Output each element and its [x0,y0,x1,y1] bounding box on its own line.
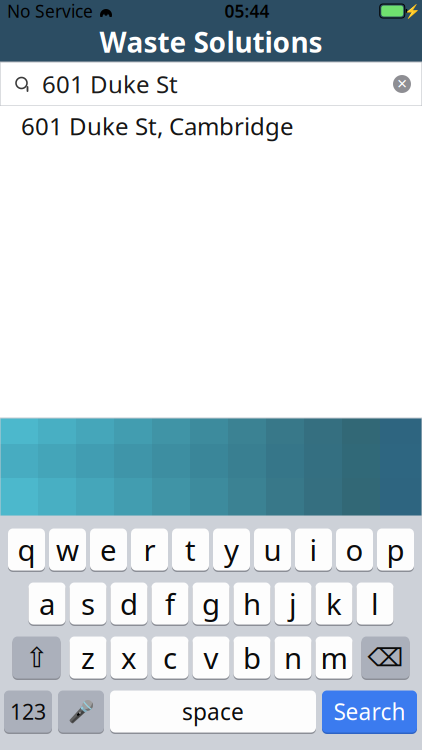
button[interactable]: Clear text [382,62,422,106]
staticText: 601 Duke St, Cambridge [21,110,294,142]
button[interactable]: k [315,581,352,626]
button[interactable]: c [151,635,188,680]
staticText: l [371,584,379,623]
button[interactable]: v [192,635,229,680]
staticText: u [263,530,281,569]
button[interactable]: p [377,527,414,572]
staticText: No Service [7,0,93,22]
staticText: b [243,638,261,677]
button[interactable]: o [336,527,373,572]
button[interactable]: a [28,581,65,626]
staticText: 05:44 [224,0,269,22]
staticText: f [165,584,175,623]
button[interactable]: x [110,635,147,680]
button[interactable]: Search [322,689,417,734]
button[interactable]: Delete [361,635,409,680]
staticText: g [202,584,220,623]
staticText: y [224,530,239,569]
button[interactable]: 601 Duke St, Cambridge [0,106,422,146]
staticText: w [56,530,79,569]
button[interactable]: Numbers [4,689,52,734]
button[interactable]: e [90,527,127,572]
staticText: c [163,638,177,677]
button[interactable]: z [69,635,106,680]
staticText: Search [333,696,405,726]
staticText: ⚡ [404,3,421,19]
button[interactable]: y [213,527,250,572]
staticText: v [203,638,218,677]
staticText: Waste Solutions [99,23,322,61]
button[interactable]: n [274,635,311,680]
button[interactable]: j [274,581,311,626]
staticText: 🎤 [67,699,94,724]
button[interactable]: g [192,581,229,626]
staticText: s [81,584,95,623]
staticText: ⇧ [25,642,48,673]
staticText: space [182,696,244,726]
staticText: 601 Duke St [42,68,178,100]
button[interactable]: q [8,527,45,572]
staticText: j [289,584,297,623]
button[interactable]: Shift [12,635,60,680]
staticText: d [120,584,138,623]
button[interactable]: l [356,581,393,626]
button[interactable]: Dictate [58,689,104,734]
button[interactable]: space [110,689,316,734]
staticText: 123 [10,697,46,726]
staticText: a [39,584,55,623]
staticText: x [121,638,137,677]
button[interactable]: u [254,527,291,572]
button[interactable]: i [295,527,332,572]
button[interactable]: t [172,527,209,572]
staticText: q [17,530,35,569]
button[interactable]: s [69,581,106,626]
staticText: m [320,638,347,677]
button[interactable]: d [110,581,147,626]
staticText: z [81,638,95,677]
staticText: o [345,530,363,569]
staticText: ⌫ [367,643,403,672]
button[interactable]: f [151,581,188,626]
button[interactable]: w [49,527,86,572]
button[interactable]: b [233,635,270,680]
staticText: n [284,638,302,677]
staticText: p [386,530,404,569]
staticText: ✕ [396,76,407,91]
staticText: e [100,530,117,569]
staticText: r [143,530,155,569]
staticText: h [243,584,261,623]
button[interactable]: h [233,581,270,626]
button[interactable]: r [131,527,168,572]
staticText: t [185,530,196,569]
button[interactable]: m [315,635,352,680]
staticText: i [309,530,317,569]
staticText: k [326,584,342,623]
